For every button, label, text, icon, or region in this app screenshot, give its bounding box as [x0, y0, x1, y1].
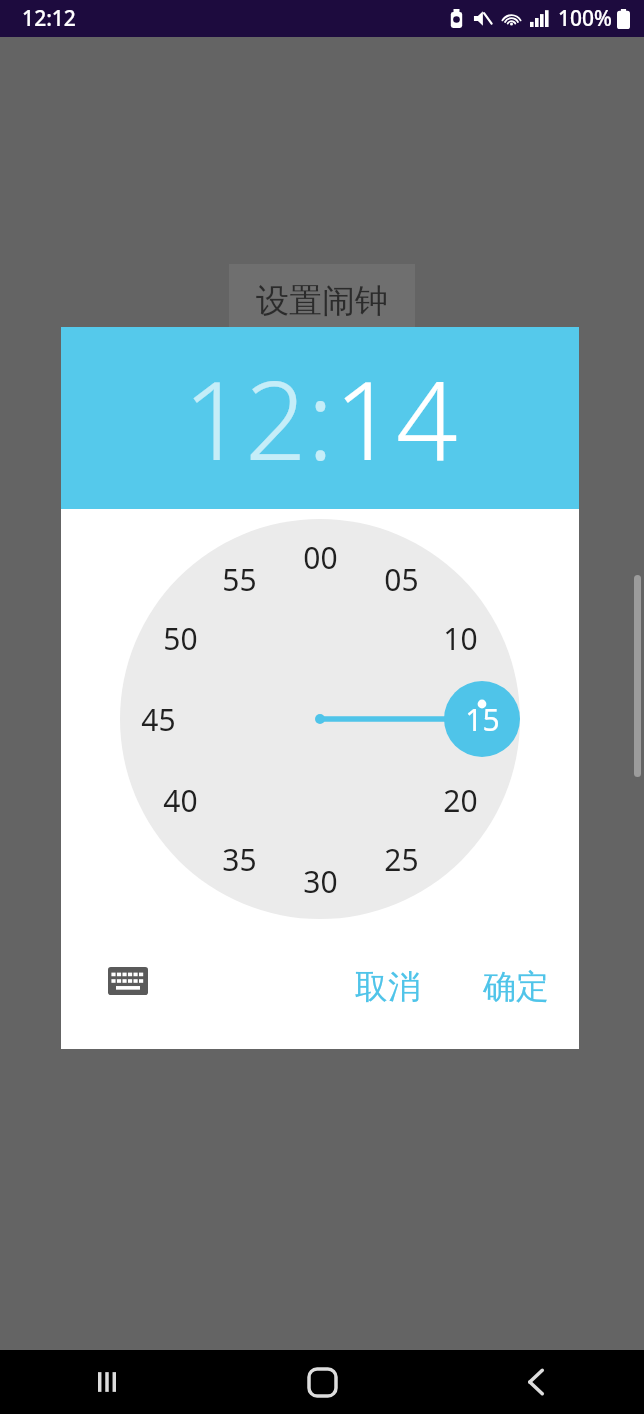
staticText: 100%	[558, 4, 612, 33]
staticText: 05	[384, 559, 419, 600]
staticText: 50	[163, 618, 198, 659]
button[interactable]: 12	[183, 345, 307, 492]
button[interactable]: Recent apps	[69, 1350, 145, 1414]
button[interactable]: 30	[288, 860, 352, 902]
button[interactable]: 20	[428, 779, 492, 821]
staticText: 12:12	[22, 4, 76, 33]
staticText: 14	[334, 345, 458, 492]
staticText: 12	[183, 345, 307, 492]
button[interactable]: 50	[148, 617, 212, 659]
staticText: 20	[443, 780, 478, 821]
button[interactable]: 35	[207, 838, 271, 880]
staticText: 15	[465, 699, 500, 740]
button[interactable]: 设置闹钟	[229, 264, 415, 338]
staticText: 45	[141, 699, 176, 740]
staticText: 取消	[355, 966, 421, 1008]
staticText: :	[307, 345, 334, 492]
staticText: 25	[384, 839, 419, 880]
button[interactable]: Home	[284, 1350, 360, 1414]
button[interactable]: 10	[428, 617, 492, 659]
staticText: 35	[222, 839, 257, 880]
button[interactable]: 25	[369, 838, 433, 880]
staticText: 设置闹钟	[256, 280, 388, 322]
staticText: 30	[303, 861, 338, 902]
button[interactable]: 取消	[339, 952, 437, 1022]
staticText: 55	[222, 559, 257, 600]
staticText: 确定	[483, 966, 549, 1008]
staticText: 00	[303, 537, 338, 578]
button[interactable]: 55	[207, 558, 271, 600]
button[interactable]: 00	[288, 536, 352, 578]
staticText: 40	[163, 780, 198, 821]
button[interactable]: 05	[369, 558, 433, 600]
button[interactable]: 40	[148, 779, 212, 821]
button[interactable]: Back	[499, 1350, 575, 1414]
button[interactable]: 15	[450, 698, 514, 740]
button[interactable]: Switch to keyboard input	[101, 954, 155, 1008]
button[interactable]: 确定	[467, 952, 565, 1022]
button[interactable]: 14	[334, 345, 458, 492]
button[interactable]: 45	[126, 698, 190, 740]
staticText: 10	[443, 618, 478, 659]
